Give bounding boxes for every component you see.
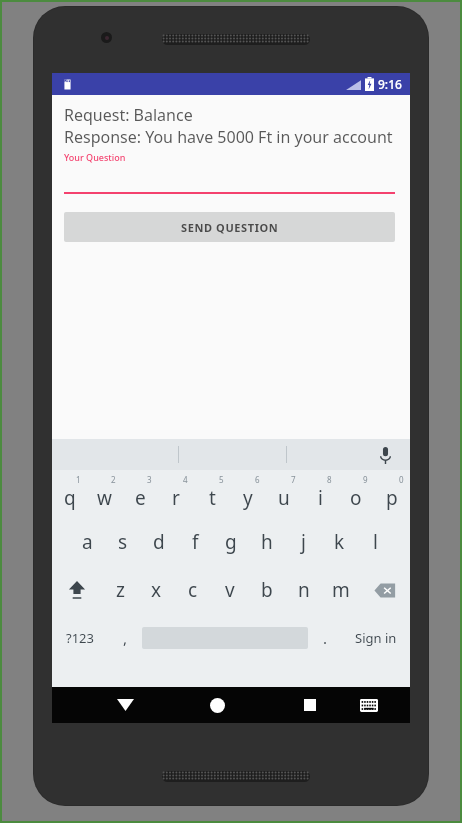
staticText: g xyxy=(225,529,237,555)
staticText: y xyxy=(243,485,253,511)
button[interactable]: 3 xyxy=(122,470,158,518)
staticText: Response: You have 5000 Ft in your accou… xyxy=(64,126,393,148)
staticText: w xyxy=(97,485,112,511)
staticText: i xyxy=(318,485,323,511)
staticText: 2 xyxy=(111,474,116,485)
staticText: ?123 xyxy=(66,629,94,647)
staticText: v xyxy=(225,577,235,603)
staticText: x xyxy=(151,577,162,603)
button[interactable]: d xyxy=(141,518,177,566)
staticText: 9 xyxy=(363,474,368,485)
button[interactable]: 8 xyxy=(302,470,338,518)
staticText: Sign in xyxy=(355,629,397,647)
button[interactable]: 2 xyxy=(87,470,122,518)
staticText: a xyxy=(82,529,93,555)
staticText: p xyxy=(386,485,398,511)
staticText: q xyxy=(64,485,76,511)
staticText: , xyxy=(123,628,128,648)
staticText: Request: Balance xyxy=(64,104,193,126)
staticText: o xyxy=(350,485,362,511)
staticText: z xyxy=(116,577,125,603)
staticText: 8 xyxy=(327,474,332,485)
button[interactable]: 6 xyxy=(230,470,266,518)
staticText: c xyxy=(188,577,198,603)
button[interactable]: m xyxy=(322,566,359,614)
staticText: d xyxy=(153,529,165,555)
staticText: h xyxy=(261,529,273,555)
button[interactable]: Back xyxy=(96,687,155,723)
button[interactable]: n xyxy=(285,566,322,614)
button[interactable]: x xyxy=(138,566,174,614)
button[interactable]: Voice input xyxy=(372,442,398,468)
button[interactable]: Shift xyxy=(52,566,102,614)
staticText: b xyxy=(261,577,273,603)
button[interactable]: f xyxy=(177,518,213,566)
staticText: r xyxy=(172,485,180,511)
staticText: Your Question xyxy=(64,151,126,163)
button[interactable]: 0 xyxy=(374,470,410,518)
staticText: 0 xyxy=(399,474,404,485)
button[interactable]: v xyxy=(211,566,248,614)
button[interactable]: 5 xyxy=(194,470,230,518)
button[interactable]: Home xyxy=(188,687,247,723)
button[interactable]: Switch keyboard xyxy=(339,687,398,723)
button[interactable]: g xyxy=(213,518,249,566)
staticText: j xyxy=(301,529,306,555)
staticText: e xyxy=(135,485,146,511)
button[interactable]: z xyxy=(102,566,138,614)
button[interactable]: l xyxy=(357,518,393,566)
staticText: SEND QUESTION xyxy=(181,220,279,235)
staticText: f xyxy=(192,529,199,555)
button[interactable] xyxy=(64,163,395,194)
staticText: n xyxy=(298,577,310,603)
button[interactable]: h xyxy=(249,518,285,566)
button[interactable]: Recent apps xyxy=(280,687,339,723)
button[interactable]: 4 xyxy=(158,470,194,518)
button[interactable]: k xyxy=(321,518,357,566)
staticText: 6 xyxy=(255,474,260,485)
button[interactable]: b xyxy=(248,566,285,614)
staticText: 3 xyxy=(147,474,152,485)
staticText: 4 xyxy=(183,474,188,485)
button[interactable]: SEND QUESTION xyxy=(64,212,395,242)
button[interactable]: j xyxy=(285,518,321,566)
staticText: 9:16 xyxy=(378,76,402,92)
staticText: . xyxy=(323,628,328,648)
button[interactable]: Sign in xyxy=(342,614,410,662)
staticText: 1 xyxy=(76,474,81,485)
staticText: k xyxy=(334,529,345,555)
staticText: l xyxy=(373,529,378,555)
staticText: 7 xyxy=(291,474,296,485)
button[interactable]: 1 xyxy=(52,470,87,518)
staticText: u xyxy=(278,485,290,511)
button[interactable]: a xyxy=(69,518,105,566)
staticText: t xyxy=(209,485,216,511)
staticText: s xyxy=(118,529,128,555)
staticText: m xyxy=(332,577,350,603)
button[interactable]: Backspace xyxy=(359,566,410,614)
button[interactable]: . xyxy=(308,614,342,662)
staticText: 5 xyxy=(219,474,224,485)
button[interactable]: ?123 xyxy=(52,614,108,662)
button[interactable]: 9 xyxy=(338,470,374,518)
button[interactable]: s xyxy=(105,518,141,566)
button[interactable]: c xyxy=(174,566,211,614)
button[interactable]: 7 xyxy=(266,470,302,518)
button[interactable]: , xyxy=(108,614,142,662)
